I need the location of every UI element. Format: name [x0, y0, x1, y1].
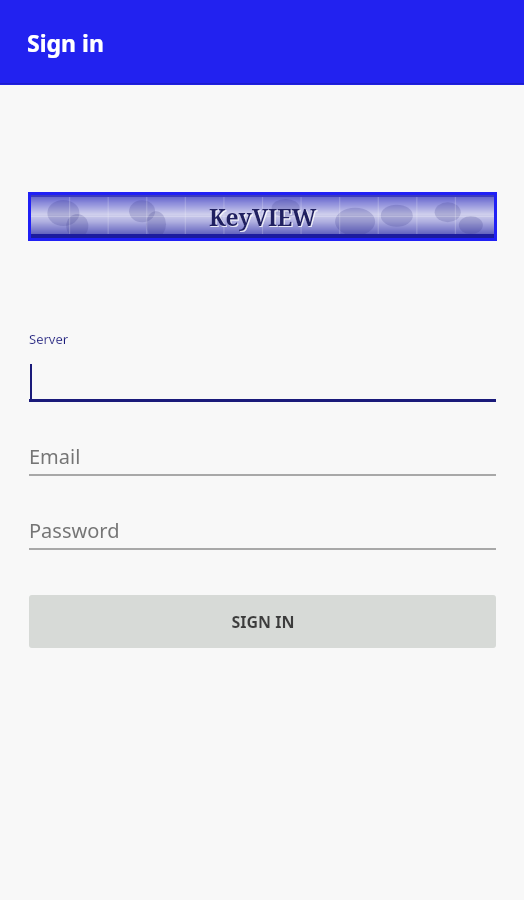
- button[interactable]: Server: [29, 330, 496, 402]
- staticText: Server: [29, 330, 69, 348]
- staticText: SIGN IN: [231, 611, 295, 633]
- staticText: Sign in: [27, 27, 104, 58]
- staticText: KeyVIEW: [209, 201, 317, 232]
- staticText: Email: [29, 443, 81, 470]
- button[interactable]: Email: [29, 438, 496, 476]
- button[interactable]: Password: [29, 512, 496, 550]
- staticText: Password: [29, 517, 120, 544]
- button[interactable]: SIGN IN: [29, 595, 496, 648]
- staticText: KeyVIEW: [210, 202, 318, 233]
